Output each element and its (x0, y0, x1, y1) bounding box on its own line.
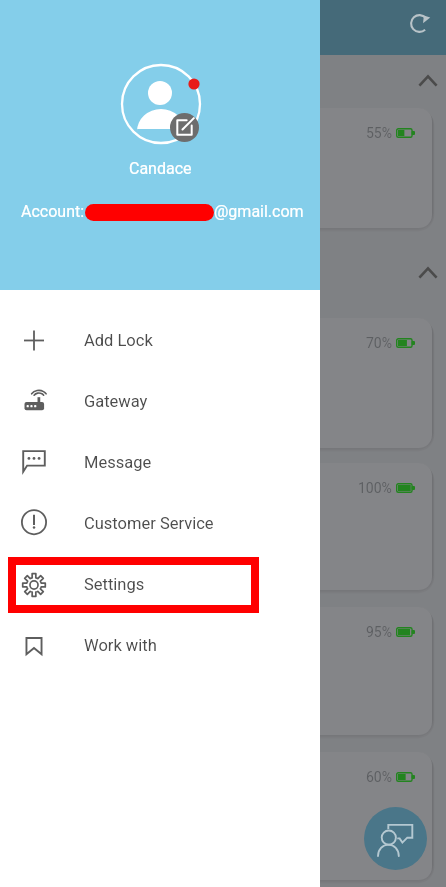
staticText: 95% (366, 624, 392, 640)
staticText: Add Lock (84, 331, 153, 350)
staticText: Customer Service (84, 514, 214, 533)
button[interactable]: Settings (0, 554, 320, 615)
button[interactable]: 95% (14, 607, 432, 735)
button[interactable]: Refresh (396, 0, 442, 46)
staticText: @gmail.com (214, 202, 304, 221)
button[interactable]: Work with (0, 615, 320, 676)
staticText: 55% (366, 125, 392, 141)
other: Collapse group (409, 253, 446, 291)
staticText: Candace (129, 159, 192, 178)
staticText: 100% (358, 480, 392, 496)
button[interactable]: Add Lock (0, 310, 320, 371)
staticText: 70% (366, 335, 392, 351)
button[interactable]: Message (0, 432, 320, 493)
button[interactable]: 100% (14, 463, 432, 590)
button[interactable]: 60% (14, 752, 432, 880)
staticText: Settings (84, 575, 145, 594)
button[interactable]: 70% (14, 318, 432, 448)
button[interactable]: Collapse group (0, 56, 446, 104)
staticText: Account: (21, 202, 85, 221)
button[interactable]: Collapse group (0, 248, 446, 296)
button[interactable]: Customer Service (0, 493, 320, 554)
staticText: Work with (84, 636, 157, 655)
button[interactable]: 55% (14, 108, 432, 228)
button[interactable]: Add user (364, 807, 427, 870)
other: Collapse group (409, 61, 446, 99)
button[interactable]: Gateway (0, 371, 320, 432)
staticText: 60% (366, 769, 392, 785)
staticText: Gateway (84, 392, 148, 411)
button[interactable]: Profile photo (119, 62, 203, 146)
staticText: Message (84, 453, 152, 472)
